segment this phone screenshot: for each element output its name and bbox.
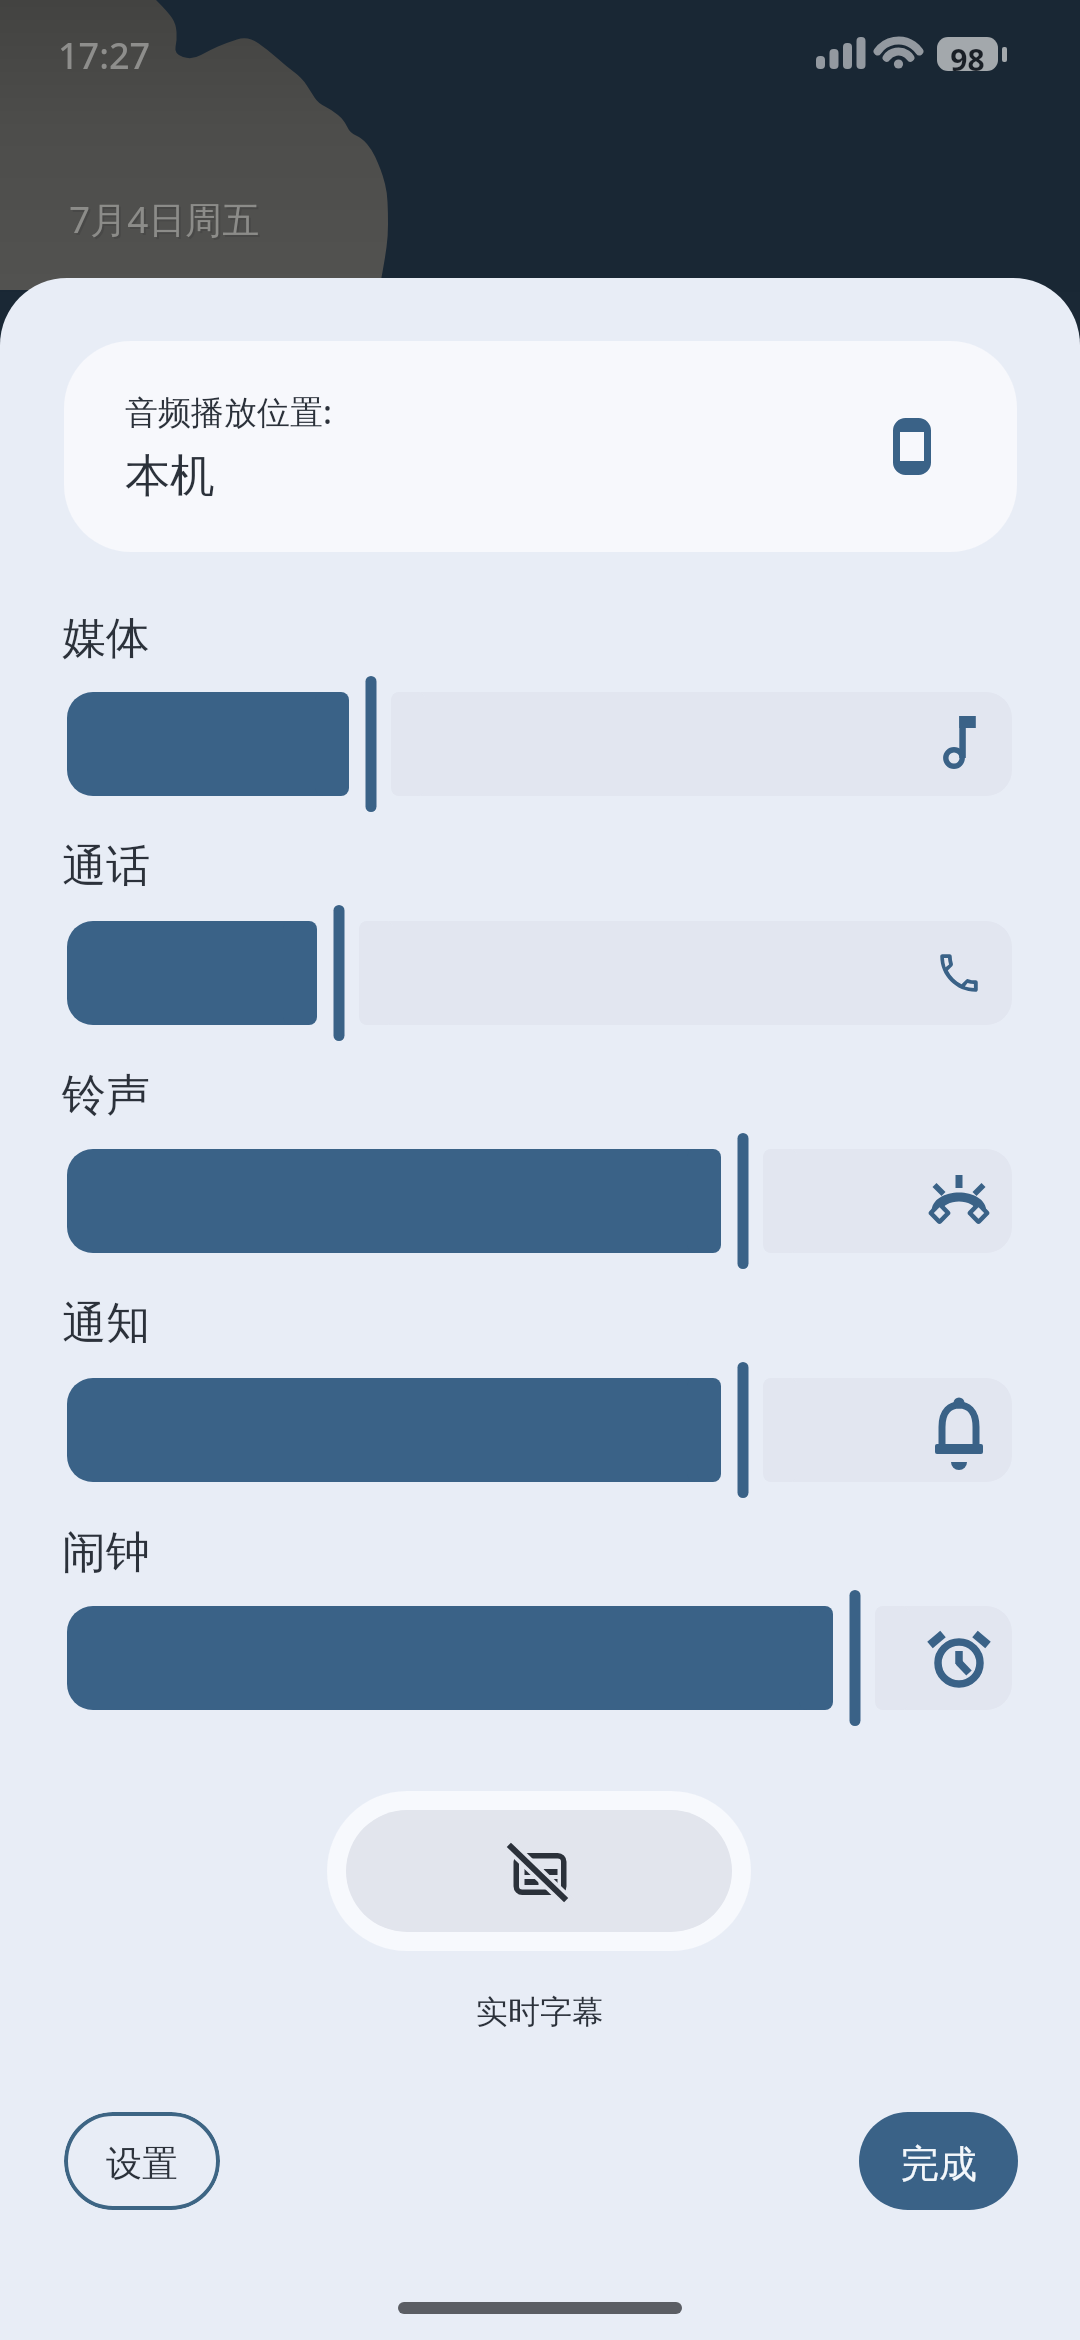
staticText: 本机 xyxy=(125,448,215,505)
button[interactable]: 铃声 xyxy=(0,1133,1080,1269)
button[interactable]: 通话 xyxy=(0,905,1080,1041)
button[interactable]: 设置 xyxy=(64,2112,220,2210)
staticText: 媒体 xyxy=(62,611,150,666)
button[interactable]: 音频播放位置: xyxy=(64,341,1017,552)
staticText: 17:27 xyxy=(58,31,151,80)
staticText: 7月4日周五 xyxy=(71,195,262,246)
staticText: 设置 xyxy=(106,2141,178,2186)
staticText: 实时字幕 xyxy=(0,1992,1080,2032)
staticText: 完成 xyxy=(901,2140,977,2188)
staticText: 98 xyxy=(937,39,998,80)
button[interactable]: 实时字幕 xyxy=(327,1791,751,1951)
button[interactable]: 通知 xyxy=(0,1362,1080,1498)
staticText: 闹钟 xyxy=(62,1525,150,1580)
staticText: 音频播放位置: xyxy=(125,389,332,434)
staticText: 铃声 xyxy=(62,1068,150,1123)
button[interactable]: 闹钟 xyxy=(0,1590,1080,1726)
staticText: 7月4日周五 xyxy=(69,193,260,244)
staticText: 通话 xyxy=(62,839,150,894)
button[interactable]: 完成 xyxy=(859,2112,1018,2210)
button[interactable]: 媒体 xyxy=(0,676,1080,812)
staticText: 通知 xyxy=(62,1296,150,1351)
